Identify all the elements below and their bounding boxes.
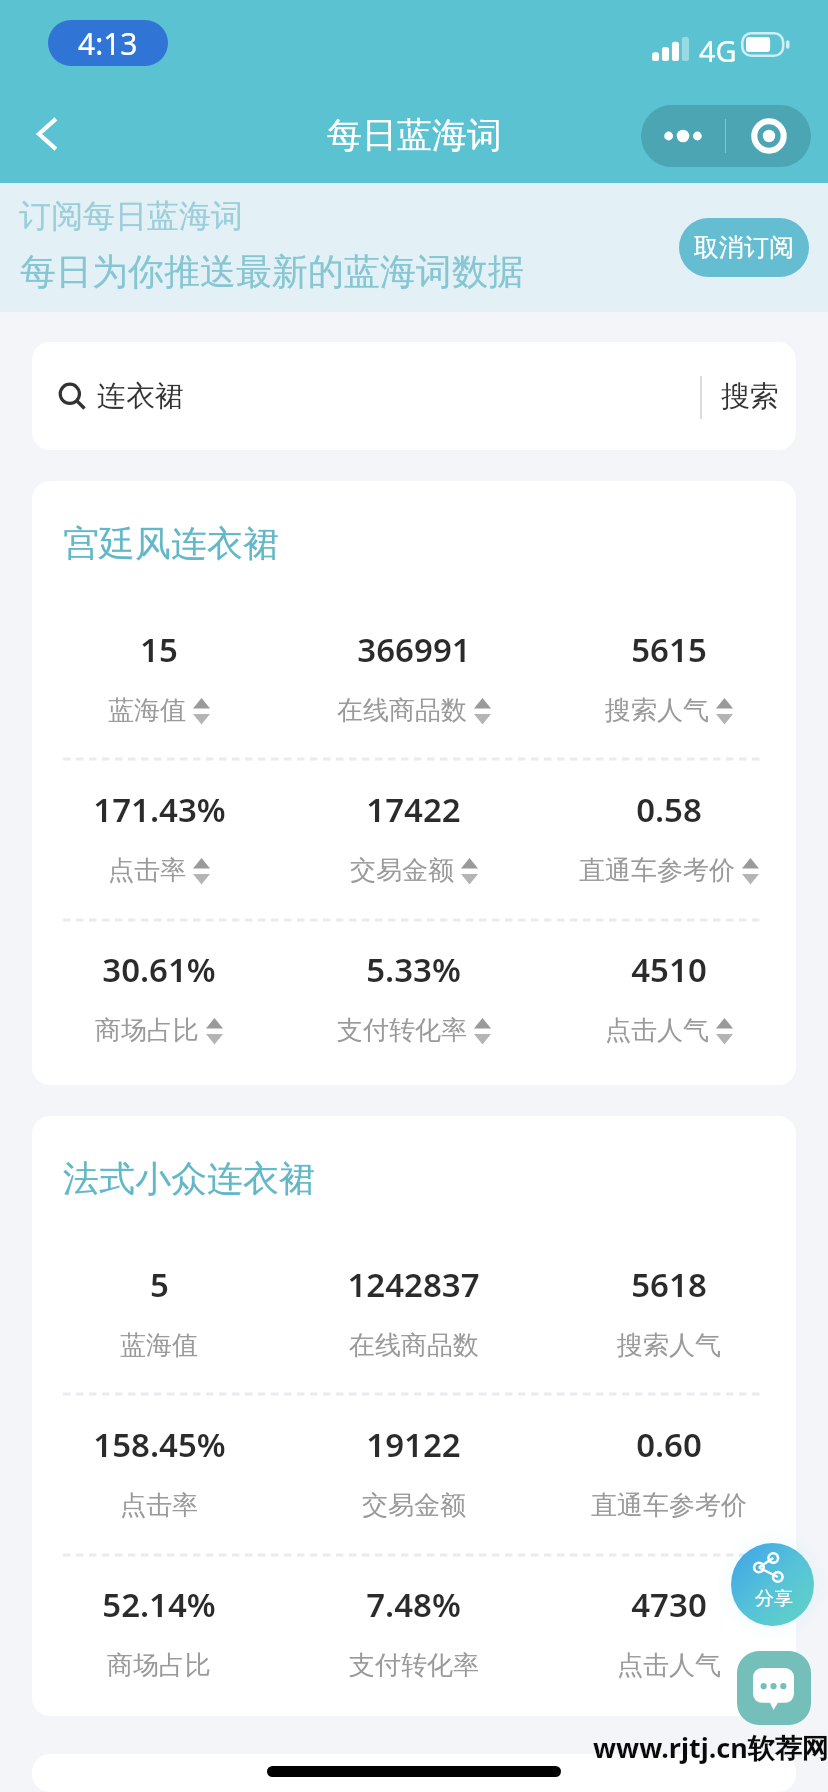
button[interactable]: 0.58: [541, 787, 796, 887]
button[interactable]: 15: [32, 627, 286, 727]
button[interactable]: 搜索: [704, 342, 796, 450]
staticText: 点击率: [120, 1489, 198, 1522]
staticText: 点击人气: [605, 1014, 709, 1047]
staticText: 连衣裙: [97, 378, 184, 415]
staticText: 直通车参考价: [579, 854, 735, 887]
staticText: 点击率: [108, 854, 186, 887]
button[interactable]: 5618: [541, 1262, 796, 1362]
button[interactable]: 19122: [286, 1422, 541, 1522]
staticText: 搜索人气: [617, 1329, 721, 1362]
button[interactable]: More options: [641, 105, 725, 167]
staticText: 在线商品数: [337, 694, 467, 727]
staticText: 5.33%: [366, 947, 461, 992]
button[interactable]: Customer service chat: [737, 1651, 811, 1725]
staticText: 取消订阅: [694, 232, 794, 263]
staticText: 商场占比: [95, 1014, 199, 1047]
staticText: 在线商品数: [349, 1329, 479, 1362]
button[interactable]: 52.14%: [32, 1582, 286, 1682]
staticText: 订阅每日蓝海词: [19, 196, 243, 236]
button[interactable]: Back: [12, 98, 84, 170]
staticText: 搜索: [721, 378, 779, 415]
button[interactable]: 366991: [286, 627, 541, 727]
button[interactable]: 171.43%: [32, 787, 286, 887]
staticText: 支付转化率: [337, 1014, 467, 1047]
staticText: 支付转化率: [349, 1649, 479, 1682]
staticText: 每日蓝海词: [327, 113, 502, 157]
staticText: 5615: [631, 627, 707, 672]
staticText: 蓝海值: [108, 694, 186, 727]
button[interactable]: 158.45%: [32, 1422, 286, 1522]
staticText: 5: [150, 1262, 169, 1307]
staticText: 商场占比: [107, 1649, 211, 1682]
staticText: 17422: [366, 787, 461, 832]
staticText: 4510: [631, 947, 707, 992]
button[interactable]: 4510: [541, 947, 796, 1047]
button[interactable]: 1242837: [286, 1262, 541, 1362]
staticText: 7.48%: [366, 1582, 461, 1627]
staticText: 366991: [357, 627, 471, 672]
staticText: 4:13: [78, 23, 138, 64]
staticText: 30.61%: [102, 947, 216, 992]
staticText: 171.43%: [93, 787, 226, 832]
button[interactable]: Close mini program: [726, 105, 811, 167]
button[interactable]: 分享: [731, 1543, 814, 1626]
staticText: 158.45%: [93, 1422, 226, 1467]
staticText: 交易金额: [362, 1489, 466, 1522]
button[interactable]: 取消订阅: [679, 218, 809, 277]
staticText: 15: [140, 627, 178, 672]
staticText: 法式小众连衣裙: [63, 1156, 315, 1201]
staticText: 0.60: [636, 1422, 702, 1467]
button[interactable]: 4730: [541, 1582, 796, 1682]
staticText: 19122: [366, 1422, 461, 1467]
staticText: 52.14%: [102, 1582, 216, 1627]
staticText: 交易金额: [350, 854, 454, 887]
staticText: 搜索人气: [605, 694, 709, 727]
staticText: 直通车参考价: [591, 1489, 747, 1522]
button[interactable]: 5.33%: [286, 947, 541, 1047]
staticText: 蓝海值: [120, 1329, 198, 1362]
staticText: 分享: [755, 1587, 793, 1611]
staticText: 点击人气: [617, 1649, 721, 1682]
staticText: 4730: [631, 1582, 707, 1627]
button[interactable]: 0.60: [541, 1422, 796, 1522]
button[interactable]: 5: [32, 1262, 286, 1362]
staticText: 宫廷风连衣裙: [63, 521, 279, 566]
staticText: www.rjtj.cn软荐网: [593, 1729, 828, 1766]
button[interactable]: 7.48%: [286, 1582, 541, 1682]
staticText: 每日为你推送最新的蓝海词数据: [20, 249, 524, 294]
button[interactable]: 17422: [286, 787, 541, 887]
button[interactable]: 5615: [541, 627, 796, 727]
button[interactable]: 30.61%: [32, 947, 286, 1047]
staticText: 5618: [631, 1262, 707, 1307]
staticText: 0.58: [636, 787, 702, 832]
staticText: 1242837: [347, 1262, 480, 1307]
staticText: 4G: [699, 31, 737, 70]
